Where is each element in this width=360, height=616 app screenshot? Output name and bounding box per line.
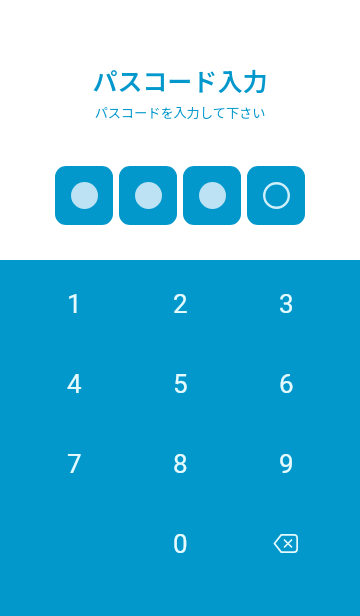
- button[interactable]: Passcode digit 2 entered: [119, 166, 177, 225]
- button[interactable]: 6: [233, 344, 339, 424]
- staticText: 7: [67, 449, 82, 479]
- staticText: 4: [67, 369, 82, 399]
- staticText: 1: [67, 289, 82, 319]
- staticText: 5: [173, 369, 188, 399]
- staticText: 6: [279, 369, 294, 399]
- button[interactable]: 5: [127, 344, 233, 424]
- button[interactable]: 4: [22, 344, 127, 424]
- staticText: 3: [279, 289, 294, 319]
- button[interactable]: 8: [127, 424, 233, 504]
- button[interactable]: 0: [127, 504, 233, 584]
- staticText: 9: [279, 449, 294, 479]
- button[interactable]: Passcode digit 3 entered: [183, 166, 241, 225]
- button[interactable]: Backspace: [233, 504, 339, 584]
- staticText: 8: [173, 449, 188, 479]
- button[interactable]: Passcode digit 4 empty: [247, 166, 305, 225]
- button[interactable]: 1: [22, 264, 127, 344]
- staticText: パスコードを入力して下さい: [0, 103, 360, 122]
- button[interactable]: 3: [233, 264, 339, 344]
- button[interactable]: 9: [233, 424, 339, 504]
- staticText: 2: [173, 289, 188, 319]
- button[interactable]: 7: [22, 424, 127, 504]
- button[interactable]: 2: [127, 264, 233, 344]
- button[interactable]: Passcode digit 1 entered: [55, 166, 113, 225]
- other: Backspace: [273, 534, 298, 553]
- staticText: 0: [173, 529, 188, 559]
- staticText: パスコード入力: [0, 62, 360, 98]
